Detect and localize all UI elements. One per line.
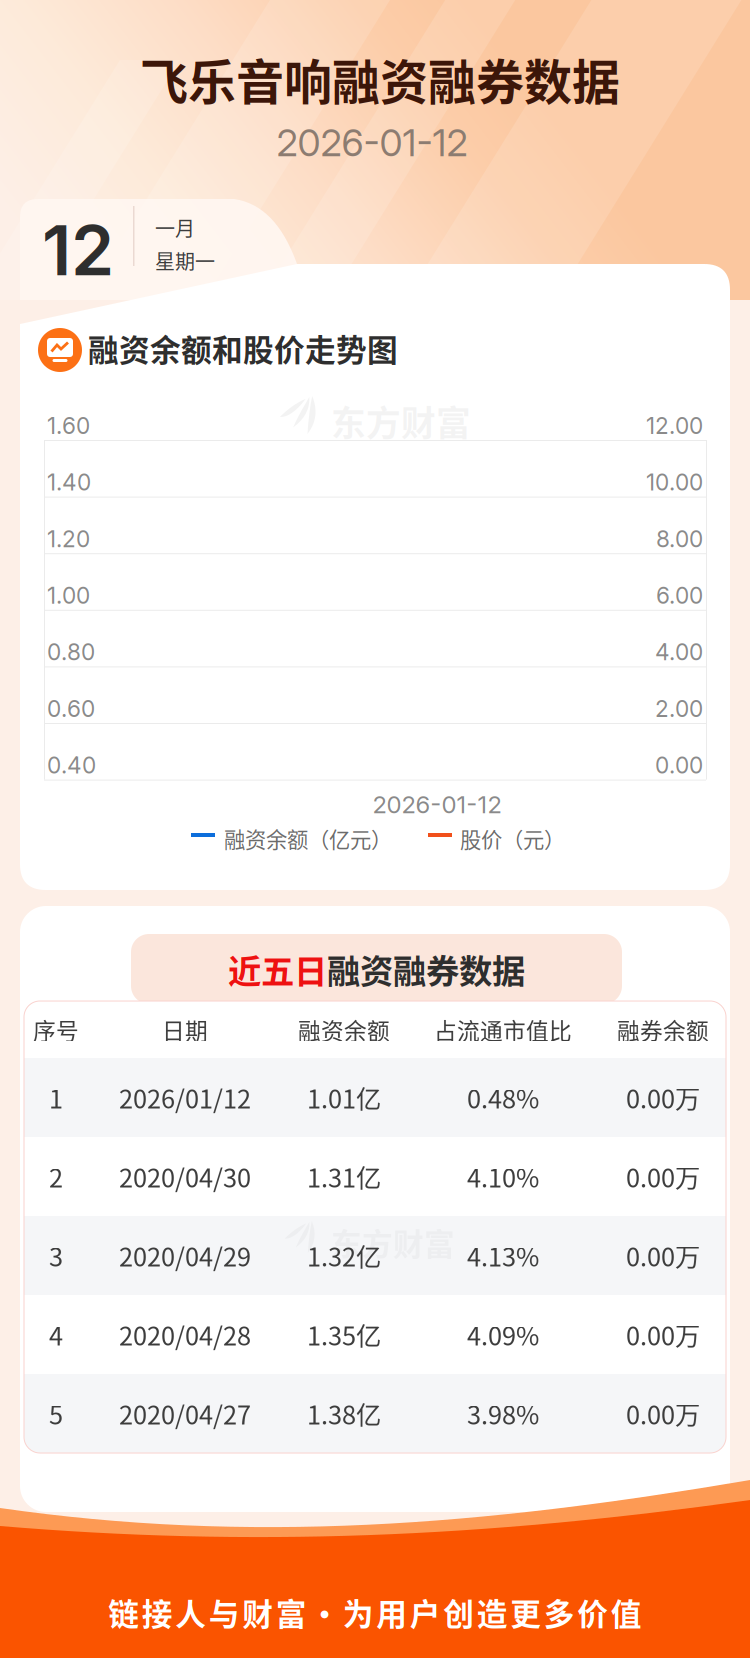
staticText: 0.60 <box>47 695 95 722</box>
staticText: 东方财富 <box>331 1220 455 1264</box>
staticText: 2 <box>49 1158 63 1195</box>
staticText: 2026-01-12 <box>276 120 467 165</box>
staticText: 4.00 <box>655 638 703 666</box>
staticText: 2020/04/28 <box>119 1316 251 1353</box>
staticText: 融资余额 <box>298 1013 390 1046</box>
staticText: 10.00 <box>646 469 703 496</box>
staticText: 12 <box>42 208 114 292</box>
staticText: 序号 <box>33 1013 79 1046</box>
staticText: 飞乐音响融资融券数据 <box>140 44 620 113</box>
staticText: 2020/04/30 <box>119 1158 251 1195</box>
staticText: 1.35亿 <box>307 1316 381 1353</box>
staticText: 链接人与财富·为用户创造更多价值 <box>108 1590 642 1634</box>
staticText: 4 <box>49 1316 63 1353</box>
staticText: 2020/04/29 <box>119 1237 251 1274</box>
staticText: 一月 <box>155 213 195 242</box>
staticText: 0.80 <box>47 638 95 666</box>
staticText: 融券余额 <box>617 1013 709 1046</box>
staticText: 4.13% <box>467 1237 539 1274</box>
staticText: 1.40 <box>47 469 91 496</box>
staticText: 0.00万 <box>626 1158 700 1195</box>
staticText: 3 <box>49 1237 63 1274</box>
staticText: 星期一 <box>155 246 215 275</box>
staticText: 1.31亿 <box>307 1158 381 1195</box>
staticText: 融资余额和股价走势图 <box>88 326 398 370</box>
staticText: 1.32亿 <box>307 1237 381 1274</box>
staticText: 0.00万 <box>626 1237 700 1274</box>
staticText: 融资余额（亿元） <box>224 823 392 854</box>
staticText: 0.00万 <box>626 1316 700 1353</box>
staticText: 近五日 <box>228 945 327 993</box>
staticText: 2.00 <box>655 695 703 722</box>
staticText: 2026/01/12 <box>119 1079 251 1116</box>
staticText: 3.98% <box>467 1395 539 1432</box>
staticText: 1 <box>49 1079 63 1116</box>
staticText: 股价（元） <box>460 823 565 854</box>
staticText: 2026-01-12 <box>372 790 501 819</box>
staticText: 0.00 <box>655 752 703 779</box>
staticText: 1.38亿 <box>307 1395 381 1432</box>
staticText: 日期 <box>162 1013 208 1046</box>
staticText: 5 <box>49 1395 63 1432</box>
staticText: 0.00万 <box>626 1395 700 1432</box>
staticText: 0.00万 <box>626 1079 700 1116</box>
staticText: 4.09% <box>467 1316 539 1353</box>
staticText: 2020/04/27 <box>119 1395 251 1432</box>
staticText: 0.40 <box>47 752 96 779</box>
staticText: 东方财富 <box>331 396 471 446</box>
staticText: 1.01亿 <box>307 1079 381 1116</box>
staticText: 6.00 <box>656 582 703 609</box>
staticText: 1.20 <box>47 525 90 553</box>
staticText: 融资融券数据 <box>327 945 525 993</box>
staticText: 1.60 <box>47 412 90 439</box>
staticText: 占流通市值比 <box>434 1013 572 1046</box>
staticText: 4.10% <box>467 1158 539 1195</box>
staticText: 0.48% <box>467 1079 539 1116</box>
staticText: 8.00 <box>656 525 703 553</box>
staticText: 12.00 <box>646 412 703 439</box>
staticText: 1.00 <box>47 582 90 609</box>
